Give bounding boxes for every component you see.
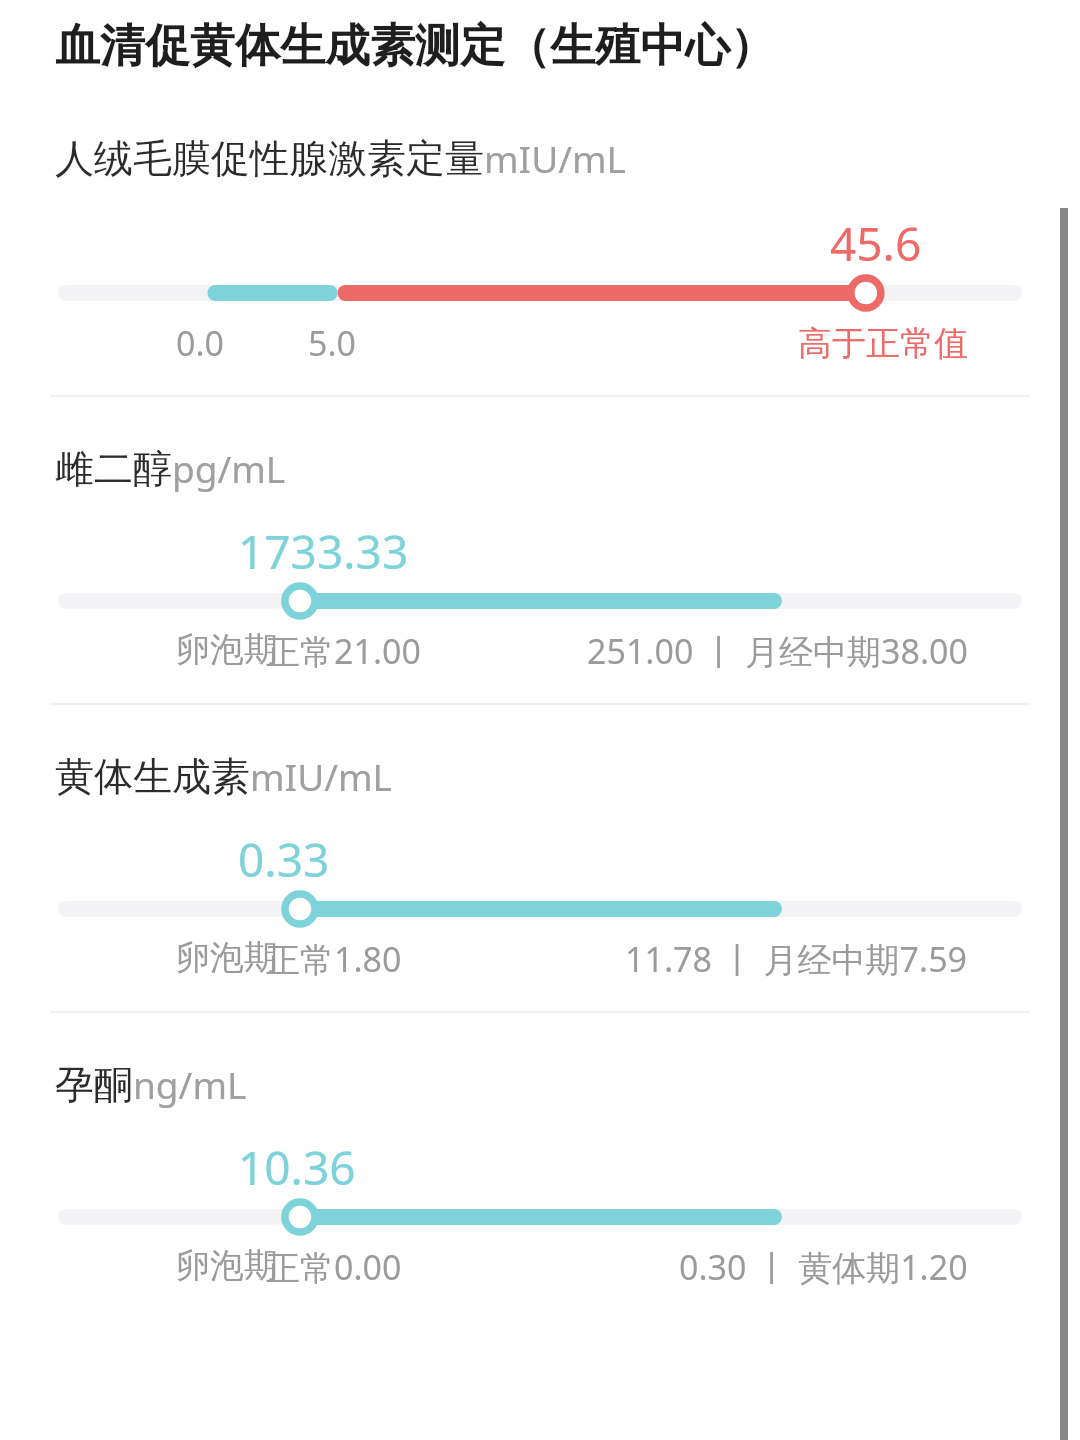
button[interactable]: 黄体生成素 (0, 705, 1080, 1013)
staticText: 卵泡期 (176, 936, 278, 979)
staticText: 251.00 丨 月经中期38.00 (587, 628, 968, 674)
staticText: mIU/mL (484, 133, 626, 183)
staticText: 卵泡期 (176, 1244, 278, 1287)
button[interactable]: 人绒毛膜促性腺激素定量 (0, 75, 1080, 397)
staticText: 正常1.80 (266, 936, 402, 982)
staticText: 卵泡期 (176, 628, 278, 671)
staticText: ng/mL (133, 1059, 247, 1109)
staticText: 5.0 (308, 320, 357, 366)
staticText: 孕酮 (55, 1060, 133, 1109)
staticText: mIU/mL (250, 751, 392, 801)
staticText: 正常0.00 (266, 1244, 402, 1290)
button[interactable]: 雌二醇 (0, 397, 1080, 705)
staticText: 雌二醇 (55, 444, 172, 493)
staticText: pg/mL (172, 443, 286, 493)
staticText: 正常21.00 (266, 628, 421, 674)
staticText: 黄体生成素 (55, 752, 250, 801)
staticText: 血清促黄体生成素测定（生殖中心） (55, 18, 775, 75)
staticText: 0.0 (176, 320, 225, 366)
staticText: 高于正常值 (798, 322, 968, 365)
staticText: 人绒毛膜促性腺激素定量 (55, 134, 484, 183)
button[interactable]: 孕酮 (0, 1013, 1080, 1319)
staticText: 11.78 丨 月经中期7.59 (625, 936, 968, 982)
staticText: 45.6 (830, 212, 922, 275)
staticText: 10.36 (238, 1136, 356, 1199)
staticText: 1733.33 (238, 520, 409, 583)
staticText: 0.30 丨 黄体期1.20 (679, 1244, 968, 1290)
staticText: 0.33 (238, 828, 330, 891)
